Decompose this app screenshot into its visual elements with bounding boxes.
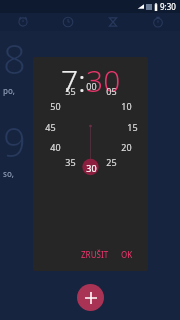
staticText: 20 [121,141,132,152]
staticText: 40 [50,141,61,152]
button[interactable]: 45 [41,121,59,132]
button[interactable]: Clock [45,13,90,31]
staticText: 9 [3,114,26,168]
staticText: 00 [86,80,97,91]
staticText: 25 [106,156,117,167]
staticText: 8 [3,31,26,85]
button[interactable]: Alarm [0,13,45,31]
button[interactable]: 05 [102,85,120,96]
button[interactable]: 50 [46,100,64,111]
staticText: OK [121,249,133,260]
button[interactable]: 55 [61,85,79,96]
button[interactable]: 00 [82,80,100,91]
button[interactable]: 7: [61,60,86,101]
button[interactable]: 8 [3,31,180,102]
staticText: 50 [50,100,61,111]
button[interactable]: 30 [86,60,121,101]
button[interactable]: Stopwatch [135,13,180,31]
staticText: 30 [86,162,97,173]
button[interactable]: 35 [61,156,79,167]
staticText: 9:30 [160,1,176,12]
button[interactable]: OK [117,246,137,263]
button[interactable]: 9 [3,114,180,185]
button[interactable]: Add alarm [77,284,104,311]
staticText: 45 [45,121,56,132]
staticText: so, [3,168,17,179]
button[interactable]: 20 [117,141,135,152]
staticText: 10 [121,100,132,111]
staticText: ZRUŠIT [81,249,109,260]
button[interactable]: 25 [102,156,120,167]
button[interactable]: 30 [82,162,100,173]
staticText: 35 [65,156,76,167]
button[interactable]: 40 [46,141,64,152]
button[interactable]: Timer [90,13,135,31]
staticText: po, [3,85,18,96]
staticText: 05 [106,85,117,96]
button[interactable]: 10 [117,100,135,111]
staticText: 55 [65,85,76,96]
button[interactable]: ZRUŠIT [77,246,113,263]
button[interactable]: 15 [123,121,141,132]
staticText: 15 [127,121,138,132]
